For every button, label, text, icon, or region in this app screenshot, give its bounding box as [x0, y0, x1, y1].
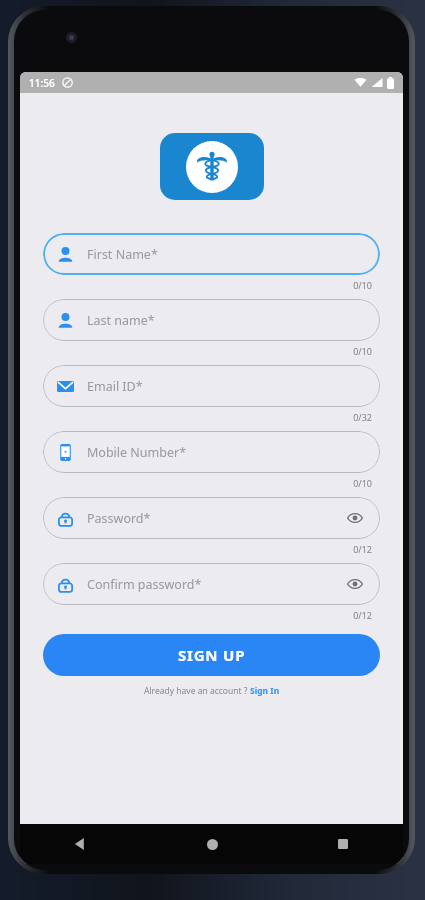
staticText: 0/12	[43, 543, 372, 555]
staticText: 0/10	[43, 345, 372, 357]
staticText: Email ID*	[87, 378, 143, 395]
button[interactable]: Home	[196, 828, 228, 860]
button[interactable]: Back	[64, 828, 96, 860]
staticText: Already have an account ?	[144, 685, 250, 697]
staticText: Confirm password*	[87, 576, 202, 593]
staticText: First Name*	[87, 246, 158, 263]
button[interactable]: First Name*	[43, 233, 380, 275]
staticText: Sign In	[250, 685, 280, 697]
button[interactable]: Mobile Number*	[43, 431, 380, 473]
button[interactable]: Toggle password visibility	[344, 573, 366, 595]
staticText: Last name*	[87, 312, 155, 329]
button[interactable]: Toggle password visibility	[344, 507, 366, 529]
staticText: 11:56	[29, 76, 55, 90]
button[interactable]: Confirm password*	[43, 563, 380, 605]
staticText: Password*	[87, 510, 151, 527]
staticText: 0/10	[43, 279, 372, 291]
button[interactable]: Password*	[43, 497, 380, 539]
staticText: 0/32	[43, 411, 372, 423]
staticText: 0/10	[43, 477, 372, 489]
staticText: SIGN UP	[178, 645, 246, 665]
button[interactable]: Already have an account ?	[43, 685, 380, 697]
button[interactable]: Email ID*	[43, 365, 380, 407]
button[interactable]: Recents	[327, 828, 359, 860]
staticText: Mobile Number*	[87, 444, 187, 461]
button[interactable]: SIGN UP	[43, 634, 380, 676]
staticText: 0/12	[43, 609, 372, 621]
button[interactable]: Last name*	[43, 299, 380, 341]
